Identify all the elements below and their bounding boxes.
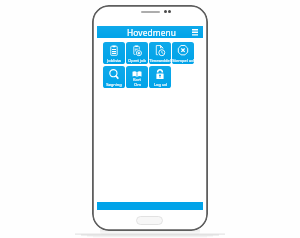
- button[interactable]: Log ud: [149, 66, 171, 88]
- button[interactable]: Timeseddel: [149, 42, 171, 64]
- staticText: Søgning: [106, 82, 122, 87]
- staticText: Timeseddel: [149, 58, 171, 63]
- staticText: Om: [134, 82, 141, 87]
- button[interactable]: Opret job: [126, 42, 148, 64]
- button[interactable]: Joblista: [103, 42, 125, 64]
- button[interactable]: Menu: [192, 26, 198, 38]
- button[interactable]: Hovedmenu: [97, 26, 203, 38]
- staticText: Hovedmenu: [127, 27, 177, 38]
- staticText: Joblista: [107, 58, 121, 63]
- staticText: Stempel ud: [172, 58, 194, 63]
- staticText: Opret job: [128, 58, 146, 63]
- staticText: Log ud: [154, 82, 167, 87]
- button[interactable]: Home: [136, 216, 163, 225]
- button[interactable]: Søgning: [103, 66, 125, 88]
- button[interactable]: Kort: [126, 66, 148, 88]
- button[interactable]: Stempel ud: [172, 42, 194, 64]
- staticText: Kort: [133, 77, 141, 82]
